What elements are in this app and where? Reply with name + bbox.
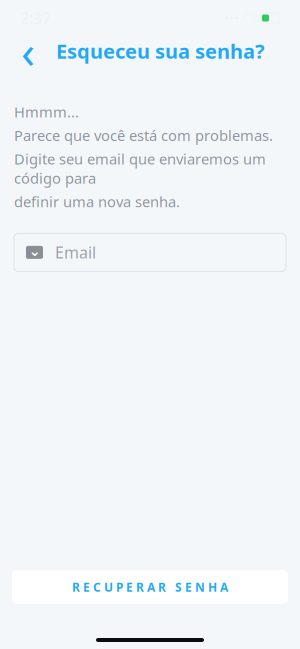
staticText: Email bbox=[55, 242, 96, 263]
staticText: ⌄ bbox=[28, 243, 40, 259]
staticText: Digite seu email que enviaremos um códig… bbox=[14, 149, 266, 188]
staticText: R E C U P E R A R S E N H A bbox=[72, 579, 228, 595]
staticText: definir uma nova senha. bbox=[14, 192, 180, 211]
staticText: Esqueceu sua senha? bbox=[56, 38, 265, 64]
button[interactable]: R E C U P E R A R S E N H A bbox=[12, 570, 288, 604]
staticText: Hmmm... bbox=[14, 102, 79, 121]
staticText: Parece que você está com problemas. bbox=[14, 125, 273, 145]
staticText: ‹ bbox=[21, 21, 35, 81]
button[interactable]: Back bbox=[6, 29, 50, 73]
button[interactable]: ⌄ bbox=[14, 233, 286, 271]
